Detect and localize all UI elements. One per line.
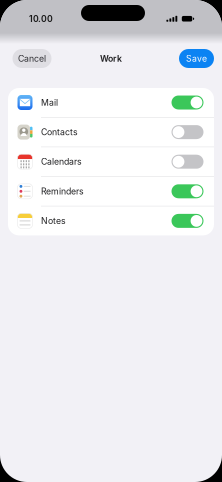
button[interactable]: Reminders [8,177,214,206]
staticText: Contacts [41,127,78,137]
button[interactable]: Contacts [8,118,214,147]
button[interactable]: Calendars [8,147,214,176]
staticText: Work [100,53,122,64]
button[interactable]: Save [179,49,214,68]
staticText: Notes [41,216,66,226]
staticText: Reminders [41,186,84,197]
staticText: Cancel [18,53,46,64]
staticText: Calendars [41,156,82,167]
button[interactable]: Cancel [12,49,51,68]
staticText: 10.00 [29,13,53,24]
staticText: Mail [41,97,58,108]
staticText: Save [186,53,207,64]
button[interactable]: Notes [8,206,214,235]
button[interactable]: Mail [8,88,214,117]
